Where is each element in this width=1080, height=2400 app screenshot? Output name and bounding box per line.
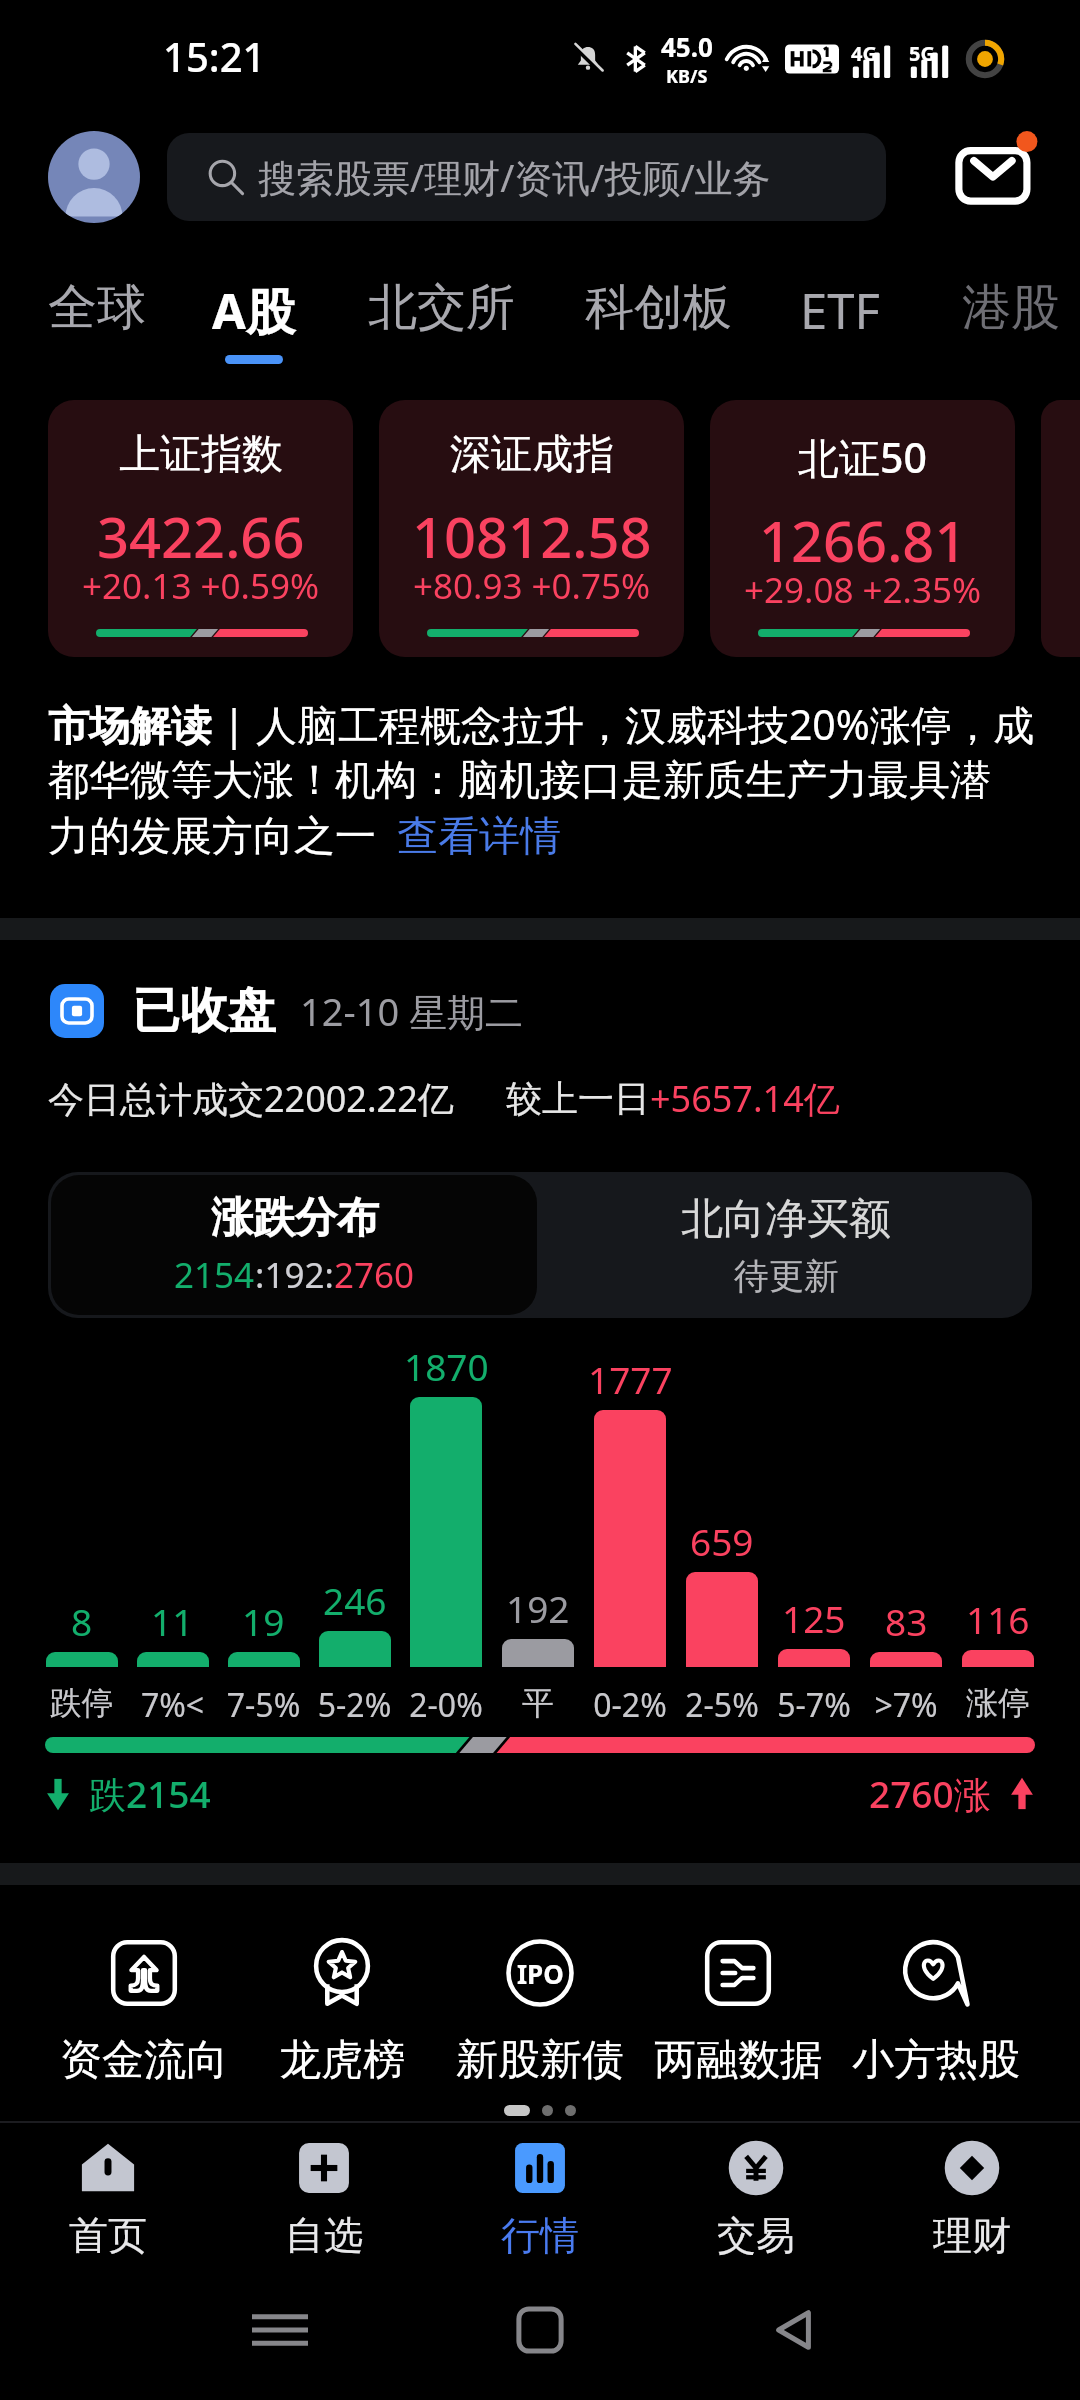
staticText: 125 [782, 1593, 846, 1643]
staticText: 搜索股票/理财/资讯/投顾/业务 [258, 151, 771, 203]
staticText: 龙虎榜 [279, 2034, 405, 2087]
button[interactable]: 全球 [48, 277, 146, 350]
staticText: 新股新债 [456, 2034, 624, 2087]
staticText: 83 [885, 1596, 928, 1646]
staticText: 跌停 [36, 1683, 127, 1723]
other: Back [770, 2306, 818, 2354]
staticText: 北向净买额 [681, 1193, 891, 1246]
button[interactable]: 理财 [864, 2136, 1080, 2276]
button[interactable]: 首页 [0, 2136, 216, 2276]
staticText: KB/S [666, 64, 708, 89]
button[interactable]: 涨跌分布 [51, 1175, 537, 1315]
staticText: 1870 [404, 1341, 489, 1391]
button[interactable]: 自选 [216, 2136, 432, 2276]
button[interactable]: 资金流向 [45, 1938, 243, 2087]
staticText: 659 [690, 1516, 754, 1566]
staticText: 行情 [501, 2211, 579, 2260]
staticText: 市场解读 | 人脑工程概念拉升，汉威科技20%涨停，成 都华微等大涨！机构：脑机… [48, 696, 1034, 863]
staticText: 2760 [334, 1251, 415, 1299]
button[interactable]: 港股 [962, 277, 1060, 350]
staticText: 5G [909, 40, 935, 67]
staticText: 7-5% [218, 1683, 309, 1727]
staticText: 4G [851, 40, 877, 67]
button[interactable]: 搜索股票/理财/资讯/投顾/业务 [167, 133, 886, 221]
staticText: 两融数据 [654, 2034, 822, 2087]
button[interactable]: 北证50 [710, 400, 1015, 657]
staticText: 2-5% [676, 1683, 768, 1727]
staticText: A股 [212, 277, 295, 344]
staticText: 资金流向 [60, 2034, 228, 2087]
staticText: 192 [506, 1583, 570, 1633]
staticText: 5-2% [309, 1683, 400, 1727]
staticText: 小方热股 [852, 2034, 1020, 2087]
button[interactable]: 两融数据 [639, 1938, 837, 2087]
staticText: 今日总计成交22002.22亿 [48, 1074, 454, 1123]
staticText: 较上一日 [506, 1076, 650, 1121]
button[interactable]: 龙虎榜 [243, 1938, 441, 2087]
staticText: 涨跌分布 [211, 1192, 379, 1245]
staticText: 0-2% [584, 1683, 676, 1727]
button[interactable]: Profile [48, 131, 140, 223]
staticText: 平 [492, 1683, 584, 1723]
staticText: 2-0% [400, 1683, 492, 1727]
staticText: 7%< [127, 1683, 218, 1727]
button[interactable]: 上证指数 [48, 400, 353, 657]
button[interactable]: 科创板 [585, 277, 732, 350]
staticText: >7% [860, 1683, 952, 1727]
button[interactable]: Messages [953, 128, 1037, 212]
staticText: 45.0 [661, 29, 713, 64]
staticText: IPO [517, 1956, 564, 1991]
staticText: 港股 [962, 277, 1060, 339]
button[interactable]: 北向净买额 [540, 1172, 1032, 1318]
staticText: 1777 [588, 1354, 673, 1404]
staticText: 15:21 [163, 29, 266, 83]
staticText: +80.93 +0.75% [413, 562, 651, 610]
staticText: +29.08 +2.35% [744, 566, 982, 614]
staticText: 跌2154 [89, 1768, 211, 1819]
staticText: 北交所 [368, 277, 515, 339]
staticText: +20.13 +0.59% [82, 562, 320, 610]
staticText: 19 [242, 1596, 285, 1646]
button[interactable]: A股 [212, 277, 295, 364]
button[interactable]: 小方热股 [837, 1938, 1035, 2087]
button[interactable]: 北交所 [368, 277, 515, 350]
staticText: 3422.66 [97, 498, 305, 574]
staticText: 已收盘 [132, 981, 276, 1041]
staticText: :192: [255, 1251, 334, 1299]
button[interactable]: IPO [441, 1938, 639, 2087]
staticText: 自选 [285, 2211, 363, 2260]
other: Home [516, 2306, 564, 2354]
button[interactable]: 交易 [648, 2136, 864, 2276]
other: Recents [252, 2308, 308, 2352]
staticText: 全球 [48, 277, 146, 339]
staticText: 北证50 [798, 429, 927, 485]
staticText: 理财 [933, 2211, 1011, 2260]
staticText: 5-7% [768, 1683, 860, 1727]
staticText: 科创板 [585, 277, 732, 339]
staticText: 2760涨 [869, 1768, 991, 1819]
staticText: ETF [800, 277, 880, 344]
staticText: 2154 [174, 1251, 255, 1299]
staticText: 首页 [69, 2211, 147, 2260]
staticText: 涨停 [952, 1683, 1044, 1723]
staticText: 深证成指 [450, 429, 614, 481]
staticText: 116 [966, 1594, 1030, 1644]
staticText: 交易 [717, 2211, 795, 2260]
staticText: 11 [151, 1596, 194, 1646]
staticText: 8 [71, 1596, 93, 1646]
button[interactable]: 行情 [432, 2136, 648, 2276]
button[interactable]: 深证成指 [379, 400, 684, 657]
staticText: +5657.14亿 [650, 1074, 840, 1123]
staticText: 1266.81 [759, 502, 967, 578]
button[interactable]: ETF [800, 277, 880, 355]
staticText: 12-10 星期二 [300, 985, 524, 1037]
staticText: 待更新 [734, 1254, 839, 1298]
staticText: 246 [323, 1575, 387, 1625]
staticText: 10812.58 [412, 498, 652, 574]
staticText: 上证指数 [119, 429, 283, 481]
